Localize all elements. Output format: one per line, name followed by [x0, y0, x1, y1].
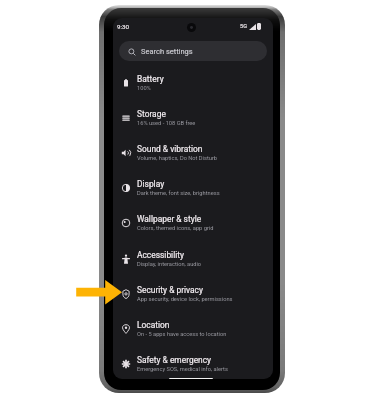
staticText: Display: [137, 179, 165, 189]
staticText: Volume, haptics, Do Not Disturb: [137, 155, 218, 162]
staticText: Accessibility: [137, 250, 184, 260]
button[interactable]: Battery: [113, 65, 273, 100]
button[interactable]: Display: [113, 170, 273, 205]
staticText: Dark theme, font size, brightness: [137, 190, 220, 197]
staticText: App security, device lock, permissions: [137, 296, 233, 303]
button[interactable]: Wallpaper & style: [113, 205, 273, 240]
button[interactable]: Storage: [113, 100, 273, 135]
button[interactable]: Safety & emergency: [113, 346, 273, 379]
staticText: Wallpaper & style: [137, 214, 202, 224]
staticText: 5G: [240, 23, 247, 30]
staticText: Battery: [137, 74, 164, 84]
button[interactable]: Location: [113, 311, 273, 346]
staticText: Sound & vibration: [137, 144, 203, 154]
staticText: Storage: [137, 109, 166, 119]
staticText: 100%: [137, 85, 151, 92]
staticText: Emergency SOS, medical info, alerts: [137, 366, 228, 373]
staticText: Display, interaction, audio: [137, 261, 202, 268]
staticText: Safety & emergency: [137, 355, 212, 365]
staticText: Colors, themed icons, app grid: [137, 225, 214, 232]
staticText: Search settings: [141, 47, 193, 56]
staticText: Location: [137, 320, 170, 330]
button[interactable]: Search settings: [119, 41, 267, 61]
button[interactable]: Security & privacy: [113, 276, 273, 311]
staticText: On - 5 apps have access to location: [137, 331, 227, 338]
button[interactable]: Sound & vibration: [113, 135, 273, 170]
button[interactable]: Accessibility: [113, 241, 273, 276]
staticText: Security & privacy: [137, 285, 203, 295]
staticText: 16% used - 108 GB free: [137, 120, 196, 127]
staticText: 9:30: [117, 23, 129, 30]
